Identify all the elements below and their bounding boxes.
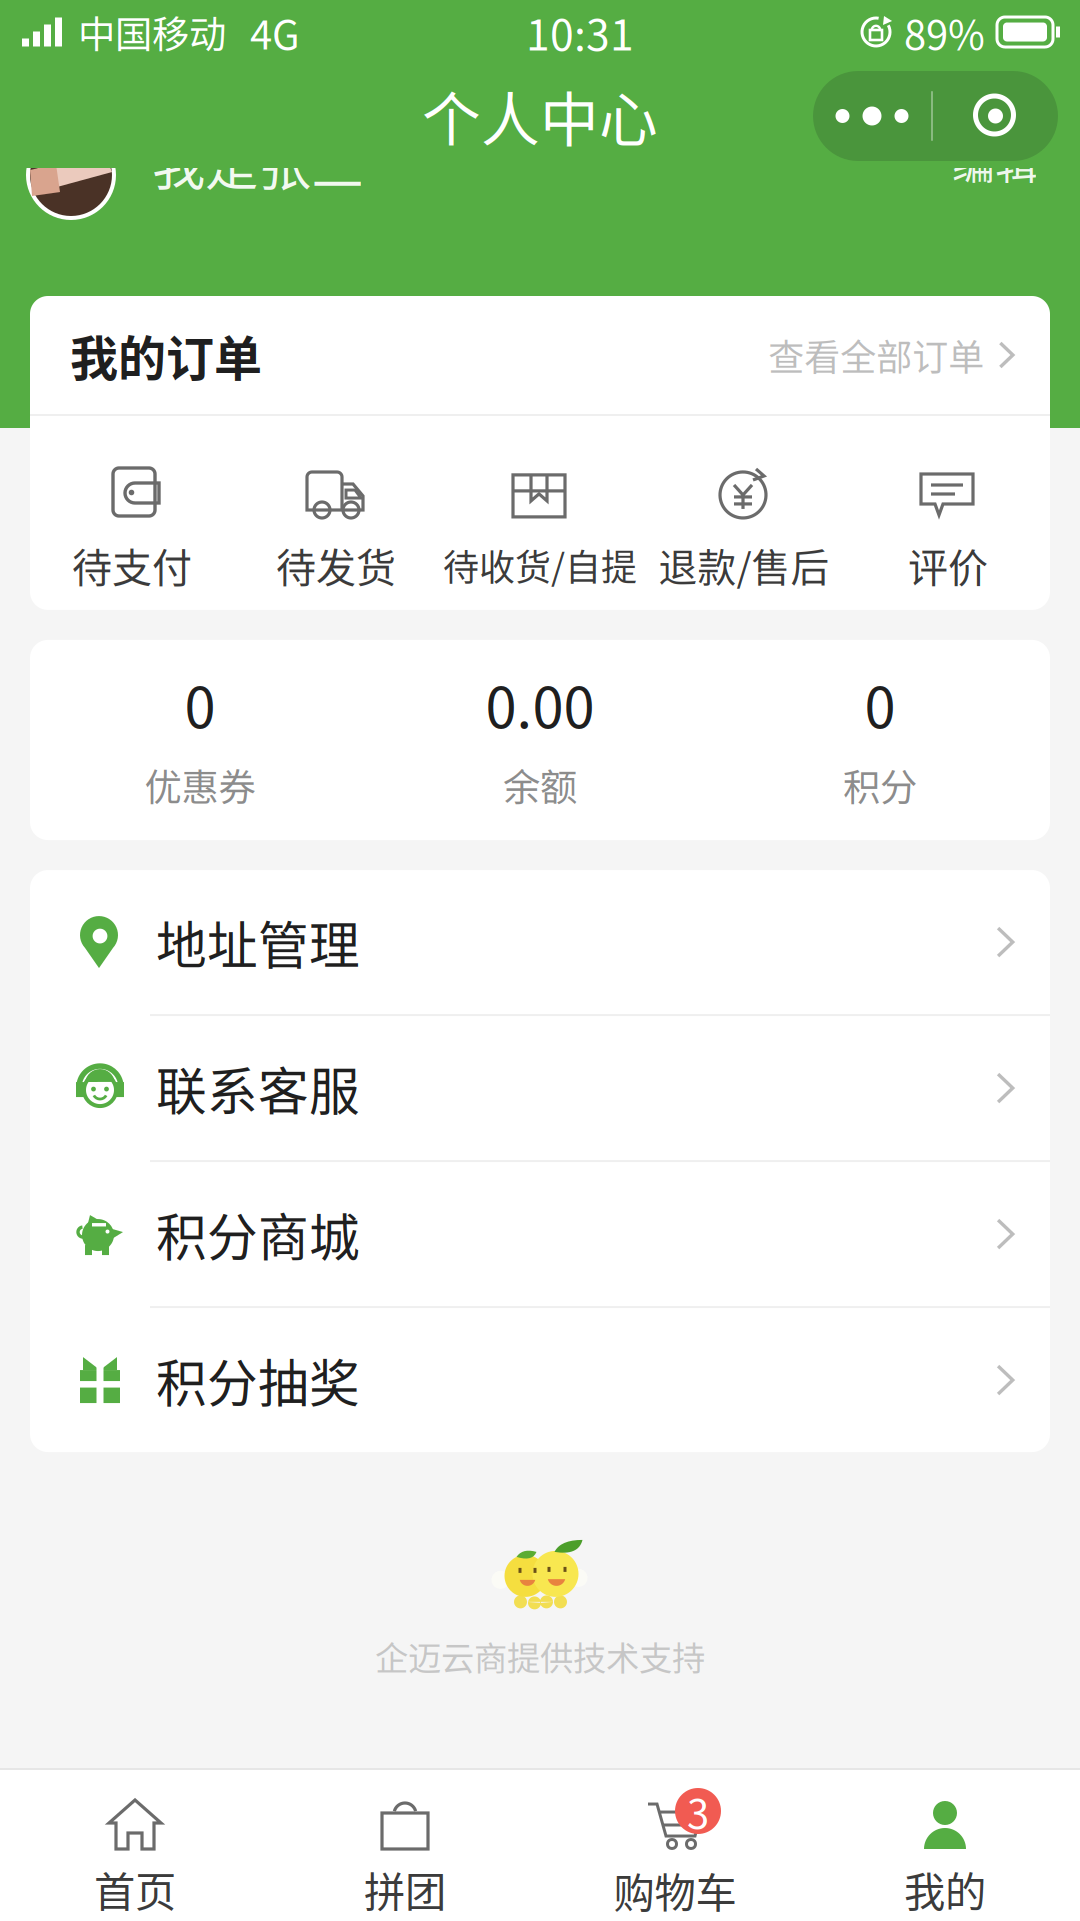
staticText: 我的 [904, 1859, 986, 1919]
button[interactable]: 更多 [813, 71, 931, 161]
staticText: 3 [687, 1782, 709, 1840]
staticText: 地址管理 [156, 905, 360, 979]
staticText: 联系客服 [156, 1051, 360, 1125]
staticText: 退款/售后 [658, 537, 829, 593]
button[interactable]: 我的 [810, 1797, 1080, 1919]
staticText: 中国移动 [78, 5, 226, 59]
staticText: 待发货 [276, 536, 396, 594]
button[interactable]: 待发货 [234, 462, 438, 594]
button[interactable]: 地址管理 [30, 870, 1050, 1014]
staticText: 优惠券 [144, 758, 255, 812]
staticText: 企迈云商提供技术支持 [375, 1632, 705, 1680]
button[interactable]: 拼团 [270, 1797, 540, 1919]
button[interactable]: 3 [540, 1796, 810, 1920]
staticText: 拼团 [364, 1859, 446, 1919]
staticText: 积分商城 [156, 1197, 360, 1271]
staticText: 0.00 [485, 663, 594, 744]
staticText: 我的订单 [70, 320, 262, 390]
button[interactable]: 待收货/自提 [438, 465, 642, 591]
staticText: 余额 [503, 758, 577, 812]
staticText: 待支付 [72, 536, 192, 594]
button[interactable]: 退款/售后 [642, 463, 846, 593]
staticText: 我是张三 [152, 124, 364, 201]
button[interactable]: 积分抽奖 [30, 1308, 1050, 1452]
staticText: 积分 [843, 758, 917, 812]
button[interactable]: 0 [710, 663, 1050, 812]
button[interactable]: 联系客服 [30, 1016, 1050, 1160]
button[interactable]: 积分商城 [30, 1162, 1050, 1306]
staticText: 0 [864, 663, 895, 744]
button[interactable]: 胶囊按钮 [933, 71, 1058, 161]
staticText: 评价 [908, 536, 988, 594]
button[interactable]: 首页 [0, 1797, 270, 1919]
button[interactable]: 待支付 [30, 462, 234, 594]
staticText: 待收货/自提 [443, 539, 637, 591]
button[interactable]: 0 [30, 663, 370, 812]
staticText: 积分抽奖 [156, 1343, 360, 1417]
staticText: 购物车 [613, 1860, 736, 1920]
staticText: 10:31 [526, 1, 634, 63]
staticText: 首页 [94, 1859, 176, 1919]
staticText: 0 [184, 663, 215, 744]
button[interactable]: 我的订单 [30, 296, 1050, 414]
staticText: 查看全部订单 [768, 329, 984, 381]
staticText: 编辑 [952, 130, 1038, 192]
staticText: 个人中心 [422, 73, 658, 158]
staticText: 4G [250, 3, 300, 61]
button[interactable]: 评价 [846, 462, 1050, 594]
staticText: 89% [904, 3, 985, 61]
button[interactable]: 0.00 [370, 663, 710, 812]
